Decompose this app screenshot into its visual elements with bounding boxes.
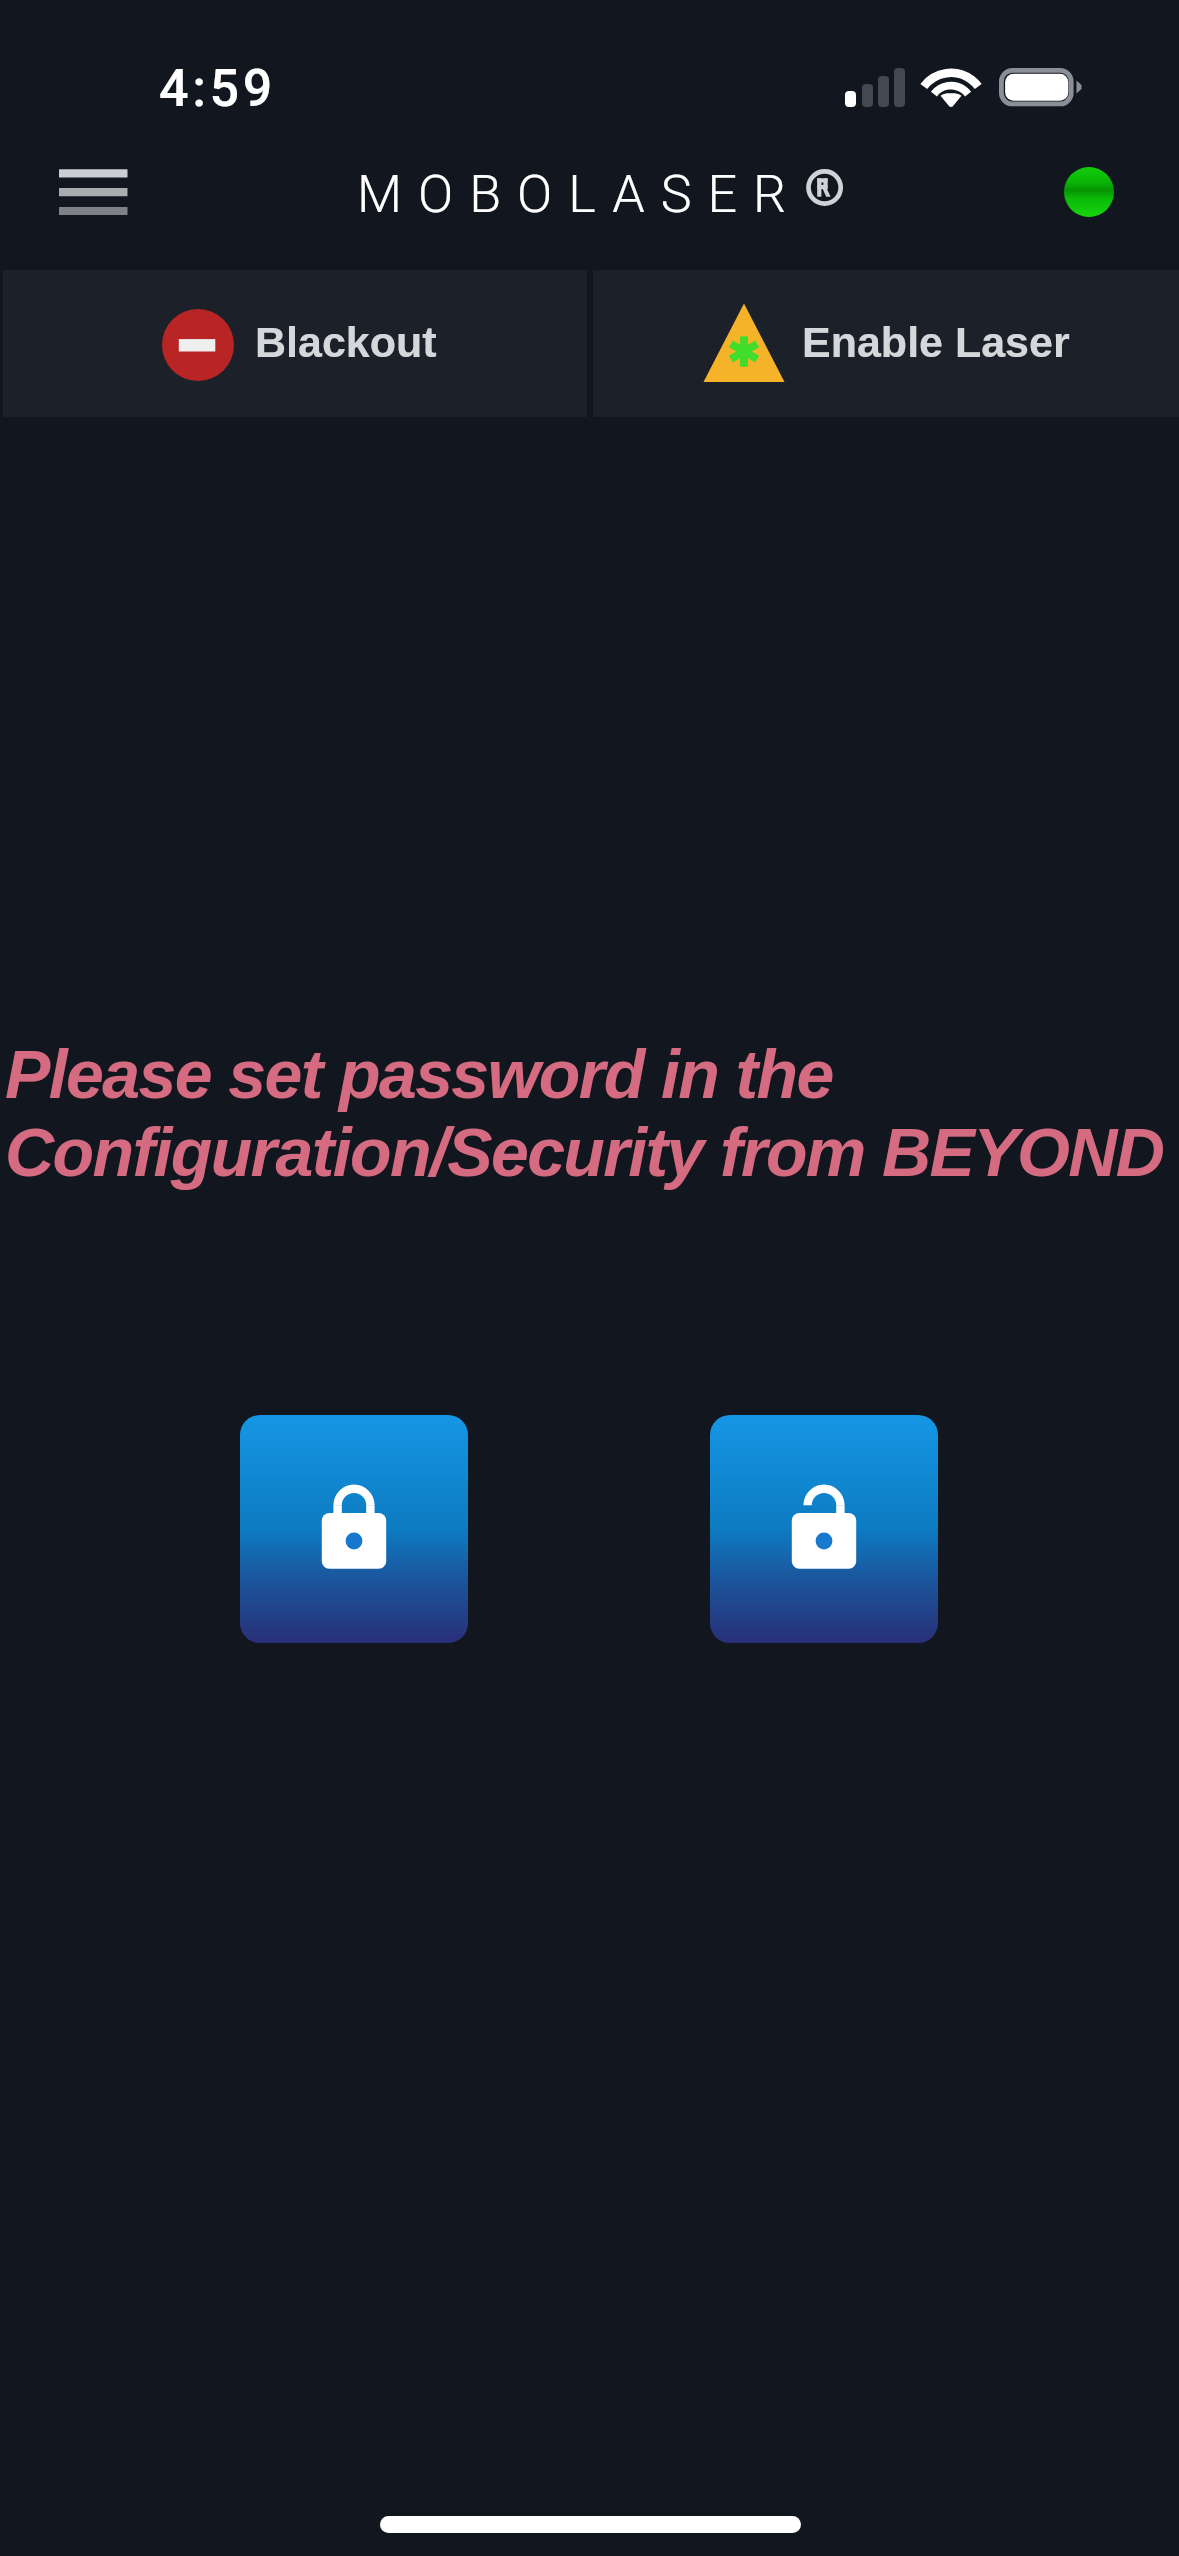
staticText: MOBOLASER: [357, 164, 803, 225]
button[interactable]: Open navigation menu: [30, 148, 158, 236]
staticText: 4:59: [159, 58, 276, 119]
button[interactable]: Blackout: [3, 270, 587, 417]
button[interactable]: Unlock: [710, 1415, 938, 1643]
staticText: Enable Laser: [802, 318, 1070, 366]
button[interactable]: Connection status: [1064, 167, 1114, 217]
button[interactable]: Enable Laser: [593, 270, 1179, 417]
staticText: Blackout: [255, 318, 437, 366]
button[interactable]: Lock: [240, 1415, 468, 1643]
staticText: Please set password in the Configuration…: [5, 1036, 1179, 1191]
